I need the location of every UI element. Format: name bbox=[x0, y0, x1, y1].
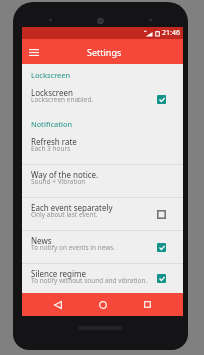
button[interactable]: Silence regime bbox=[22, 264, 183, 293]
staticText: To notify on events in news. bbox=[31, 243, 116, 252]
staticText: 21:46 bbox=[162, 28, 180, 38]
staticText: Only about last event. bbox=[31, 210, 98, 219]
staticText: Each 3 hours bbox=[31, 144, 71, 153]
button[interactable]: Back bbox=[42, 293, 73, 316]
staticText: Lockscreen bbox=[31, 87, 73, 98]
staticText: Each event separately bbox=[31, 202, 113, 213]
button[interactable]: Open navigation menu bbox=[25, 43, 43, 61]
staticText: Refresh rate bbox=[31, 136, 77, 147]
button[interactable]: Home bbox=[87, 293, 118, 316]
staticText: Settings bbox=[87, 46, 122, 58]
staticText: To notify without sound and vibration. bbox=[31, 276, 148, 285]
staticText: Sound + Vibration bbox=[31, 177, 86, 186]
staticText: Way of the notice. bbox=[31, 169, 99, 180]
button[interactable]: Each event separately bbox=[22, 198, 183, 231]
staticText: Silence regime bbox=[31, 268, 87, 279]
button[interactable]: News bbox=[22, 231, 183, 264]
staticText: Notification bbox=[31, 119, 73, 129]
button[interactable]: Way of the notice. bbox=[22, 165, 183, 198]
button[interactable]: Recent apps bbox=[132, 293, 163, 316]
staticText: Lockscreen bbox=[31, 70, 71, 80]
staticText: Lockscreen enabled. bbox=[31, 95, 94, 104]
staticText: News bbox=[31, 235, 52, 246]
button[interactable]: Lockscreen bbox=[22, 83, 183, 116]
button[interactable]: Refresh rate bbox=[22, 132, 183, 165]
